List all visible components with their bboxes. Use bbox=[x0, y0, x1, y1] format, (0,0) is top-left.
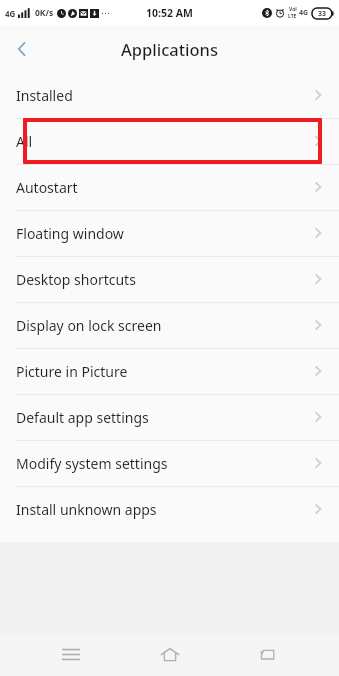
button[interactable]: Back bbox=[240, 633, 296, 676]
button[interactable]: All bbox=[0, 118, 339, 164]
button[interactable]: Desktop shortcuts bbox=[0, 256, 339, 302]
staticText: 10:52 AM bbox=[146, 6, 193, 20]
staticText: Floating window bbox=[16, 224, 311, 243]
button[interactable]: Floating window bbox=[0, 210, 339, 256]
button[interactable]: Modify system settings bbox=[0, 440, 339, 486]
button[interactable]: Home bbox=[142, 633, 198, 676]
staticText: Autostart bbox=[16, 178, 311, 197]
button[interactable]: Default app settings bbox=[0, 394, 339, 440]
staticText: All bbox=[16, 132, 311, 151]
staticText: LTE bbox=[288, 13, 297, 20]
button[interactable]: Installed bbox=[0, 72, 339, 118]
staticText: 4G bbox=[299, 8, 309, 18]
staticText: Vol bbox=[289, 6, 297, 13]
staticText: 0K/s bbox=[35, 7, 54, 19]
staticText: Display on lock screen bbox=[16, 316, 311, 335]
staticText: 4G bbox=[5, 8, 16, 19]
button[interactable]: Menu bbox=[43, 633, 99, 676]
staticText: Default app settings bbox=[16, 408, 311, 427]
staticText: Installed bbox=[16, 86, 311, 105]
button[interactable]: Back bbox=[0, 27, 44, 71]
button[interactable]: Picture in Picture bbox=[0, 348, 339, 394]
staticText: Picture in Picture bbox=[16, 362, 311, 381]
staticText: 33 bbox=[318, 9, 327, 19]
staticText: Desktop shortcuts bbox=[16, 270, 311, 289]
staticText: ⋯ bbox=[101, 8, 110, 18]
staticText: Applications bbox=[121, 38, 218, 60]
staticText: Modify system settings bbox=[16, 454, 311, 473]
staticText: Install unknown apps bbox=[16, 500, 311, 519]
button[interactable]: Autostart bbox=[0, 164, 339, 210]
button[interactable]: Install unknown apps bbox=[0, 486, 339, 532]
button[interactable]: Display on lock screen bbox=[0, 302, 339, 348]
